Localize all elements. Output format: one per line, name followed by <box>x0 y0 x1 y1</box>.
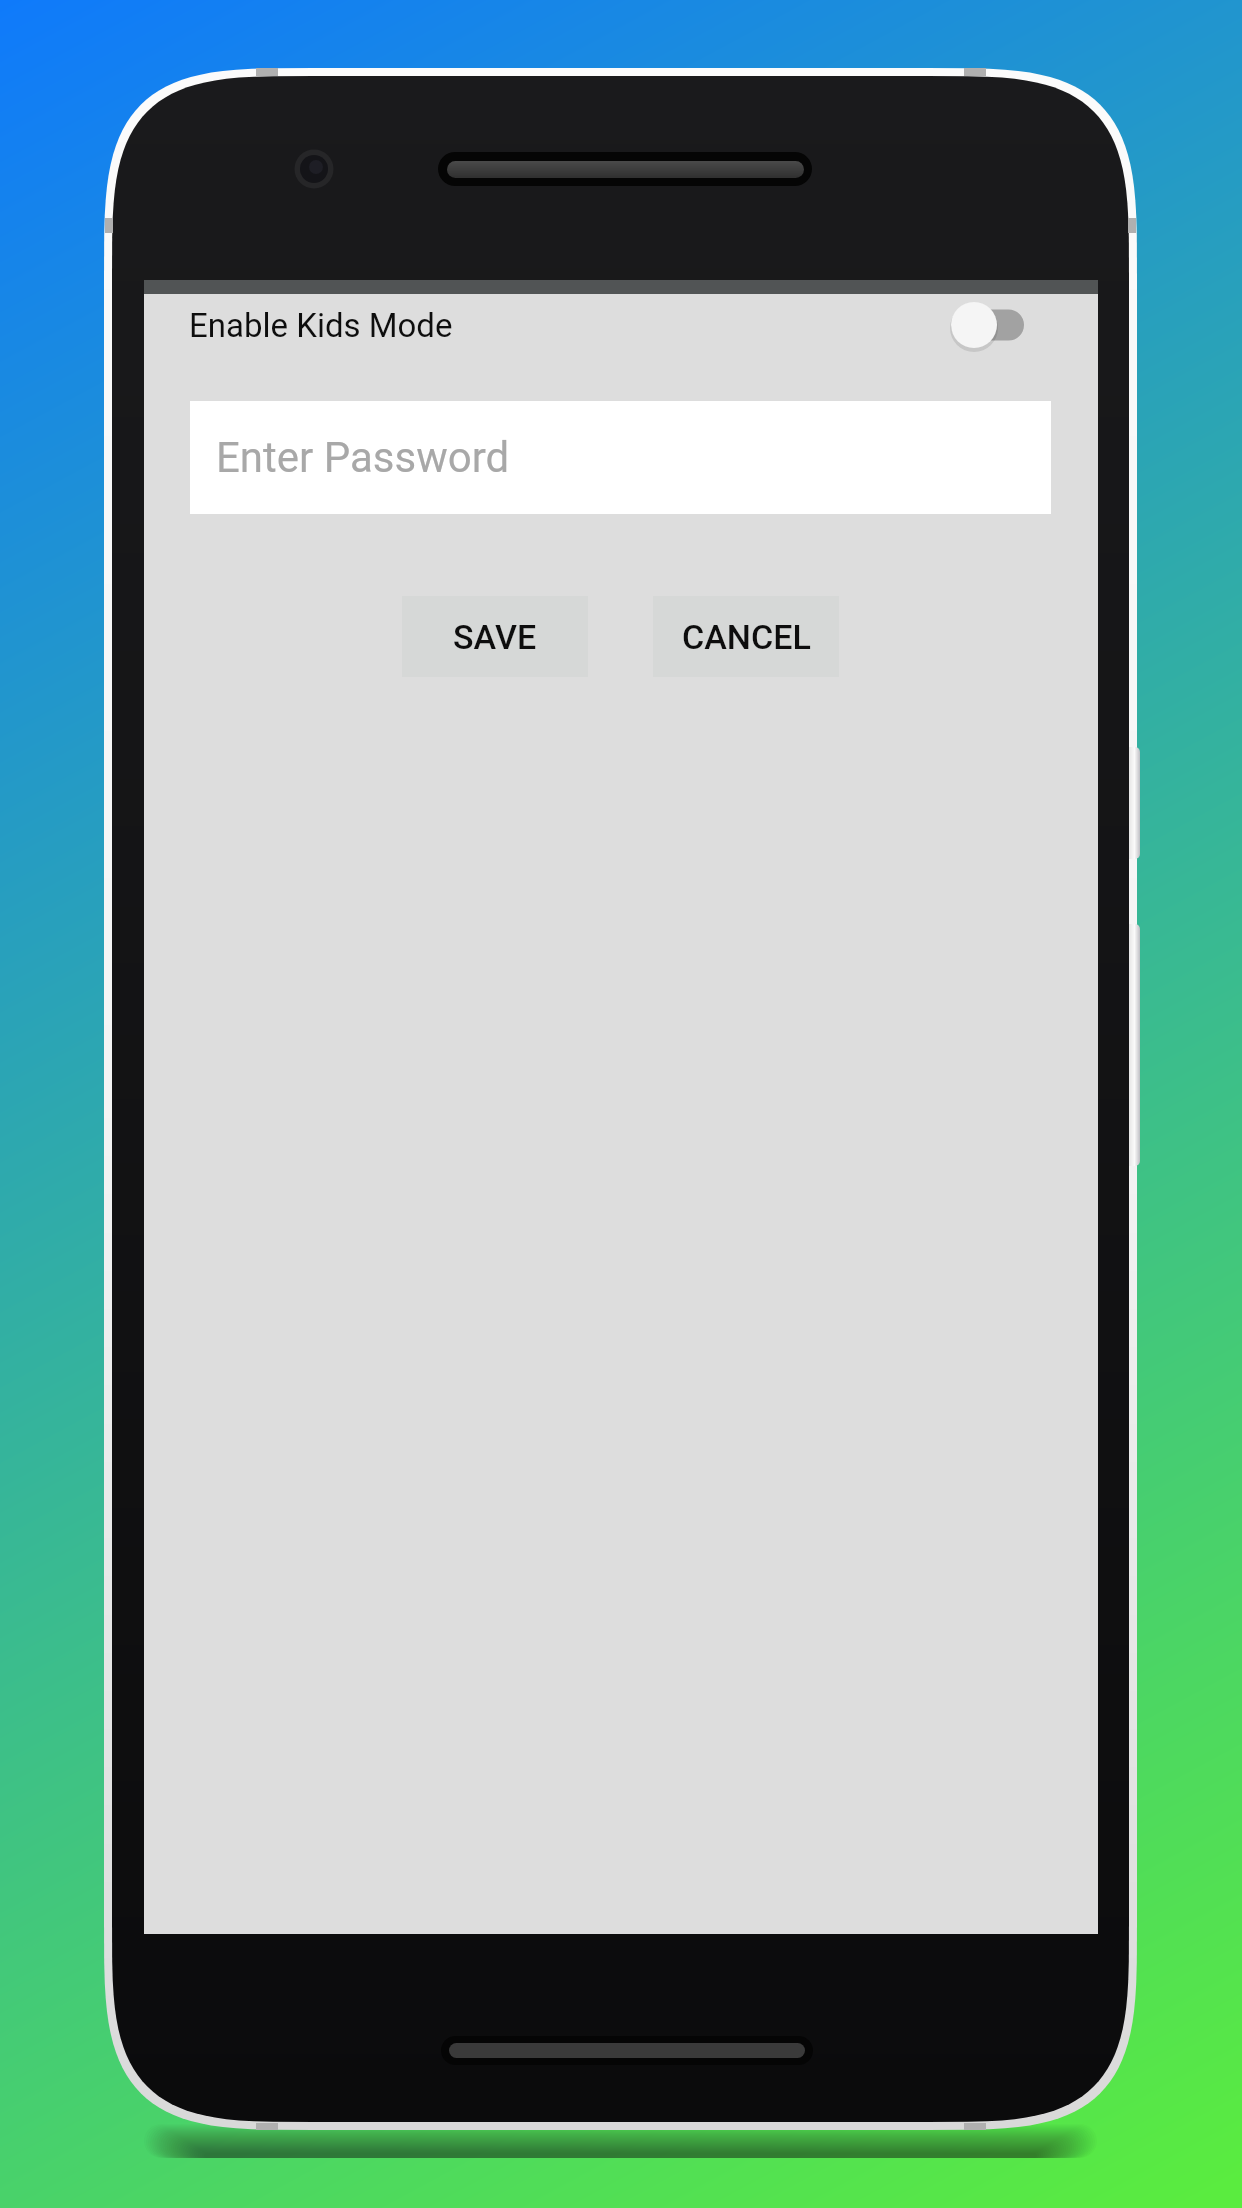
staticText: CANCEL <box>682 617 811 657</box>
button[interactable]: Enter Password <box>190 401 1051 514</box>
staticText: Enter Password <box>216 433 510 482</box>
staticText: Enable Kids Mode <box>189 306 453 345</box>
button[interactable]: Enable Kids Mode <box>144 294 1098 356</box>
button[interactable]: SAVE <box>402 596 588 677</box>
button[interactable]: CANCEL <box>653 596 839 677</box>
staticText: SAVE <box>453 617 537 657</box>
button[interactable]: Enable Kids Mode toggle <box>951 300 1025 350</box>
